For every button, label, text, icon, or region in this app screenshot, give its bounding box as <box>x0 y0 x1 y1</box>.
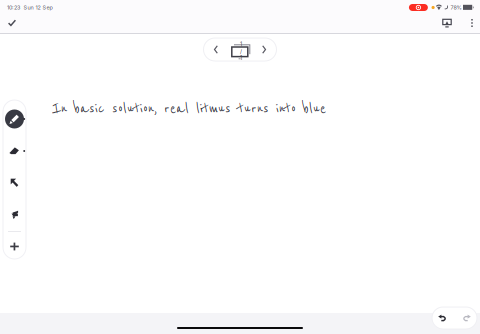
button[interactable]: Eraser <box>3 135 26 167</box>
staticText: 10:23 <box>7 4 20 11</box>
button[interactable]: Add tool <box>3 238 26 255</box>
button[interactable]: Pages <box>225 38 255 61</box>
button[interactable]: Highlighter <box>3 199 26 231</box>
button[interactable]: Undo <box>432 307 453 329</box>
staticText: Sun 12 Sep <box>23 4 52 11</box>
staticText: 1/1 <box>240 41 242 61</box>
button[interactable]: Previous page <box>207 38 225 60</box>
button[interactable]: Pen <box>3 103 26 135</box>
button[interactable]: Next page <box>255 38 273 60</box>
button[interactable]: Done <box>3 13 21 32</box>
staticText: In basic solution, real litmus turns int… <box>52 100 326 118</box>
button[interactable]: Screen mirroring <box>438 13 456 32</box>
button[interactable]: Select <box>3 167 26 199</box>
button[interactable]: Redo <box>456 307 477 329</box>
staticText: 78% <box>450 4 461 11</box>
button[interactable]: More <box>464 13 480 32</box>
